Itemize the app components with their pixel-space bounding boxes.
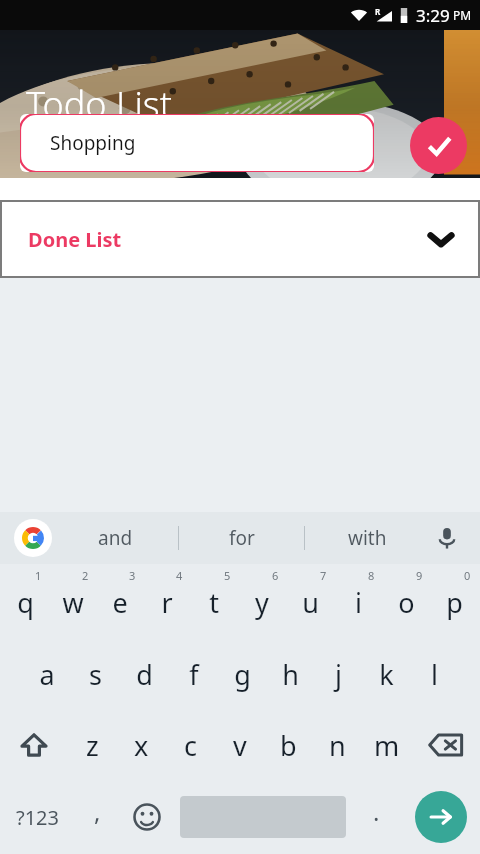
staticText: r: [161, 584, 173, 621]
staticText: 8: [368, 568, 375, 583]
staticText: t: [209, 584, 219, 621]
staticText: ,: [94, 795, 101, 828]
staticText: 2: [82, 568, 89, 583]
button[interactable]: b: [264, 710, 313, 780]
staticText: i: [355, 584, 362, 621]
staticText: 5: [224, 568, 231, 583]
staticText: x: [134, 727, 149, 764]
staticText: 9: [416, 568, 423, 583]
button[interactable]: v: [215, 710, 264, 780]
button[interactable]: x: [117, 710, 166, 780]
button[interactable]: ,: [75, 780, 120, 854]
staticText: 4: [176, 568, 183, 583]
staticText: 0: [464, 568, 471, 583]
button[interactable]: Google: [14, 519, 52, 557]
button[interactable]: and: [52, 512, 178, 564]
button[interactable]: r: [143, 566, 190, 638]
button[interactable]: for: [179, 512, 304, 564]
button[interactable]: q: [2, 566, 49, 638]
staticText: s: [89, 656, 102, 693]
staticText: a: [39, 656, 55, 693]
button[interactable]: Done List: [2, 202, 478, 276]
staticText: c: [184, 727, 197, 764]
button[interactable]: Emoji: [120, 780, 174, 854]
button[interactable]: Shopping: [20, 114, 374, 172]
staticText: 3: [129, 568, 136, 583]
button[interactable]: ?123: [0, 780, 75, 854]
button[interactable]: w: [49, 566, 96, 638]
staticText: 6: [272, 568, 279, 583]
staticText: d: [136, 656, 153, 693]
staticText: w: [62, 584, 84, 621]
button[interactable]: Backspace: [411, 710, 480, 780]
button[interactable]: m: [362, 710, 411, 780]
staticText: and: [98, 525, 133, 551]
staticText: p: [446, 584, 463, 621]
button[interactable]: j: [314, 638, 362, 710]
staticText: g: [234, 656, 251, 693]
staticText: .: [373, 795, 380, 828]
button[interactable]: with: [305, 512, 430, 564]
button[interactable]: d: [120, 638, 169, 710]
button[interactable]: Enter: [415, 791, 467, 843]
staticText: b: [280, 727, 297, 764]
staticText: h: [282, 656, 299, 693]
staticText: o: [398, 584, 415, 621]
button[interactable]: g: [218, 638, 266, 710]
staticText: v: [233, 727, 247, 764]
button[interactable]: Shift: [0, 710, 68, 780]
button[interactable]: u: [286, 566, 334, 638]
staticText: l: [431, 656, 438, 693]
button[interactable]: y: [238, 566, 286, 638]
staticText: Todo List: [26, 80, 172, 129]
staticText: Shopping: [50, 130, 136, 156]
button[interactable]: f: [169, 638, 218, 710]
staticText: ?123: [16, 804, 59, 831]
staticText: m: [374, 727, 400, 764]
staticText: 1: [35, 568, 42, 583]
staticText: u: [302, 584, 319, 621]
staticText: n: [329, 727, 346, 764]
button[interactable]: Add todo: [410, 117, 467, 174]
staticText: with: [348, 525, 387, 551]
button[interactable]: h: [266, 638, 314, 710]
staticText: for: [229, 525, 255, 551]
staticText: z: [86, 727, 99, 764]
button[interactable]: s: [71, 638, 120, 710]
button[interactable]: c: [166, 710, 215, 780]
staticText: 7: [320, 568, 327, 583]
staticText: j: [335, 656, 342, 693]
staticText: PM: [453, 7, 472, 23]
staticText: R: [375, 6, 381, 17]
staticText: q: [17, 584, 34, 621]
button[interactable]: o: [382, 566, 430, 638]
button[interactable]: n: [313, 710, 362, 780]
staticText: f: [189, 656, 199, 693]
button[interactable]: a: [22, 638, 71, 710]
staticText: 3:29: [416, 4, 450, 27]
button[interactable]: k: [362, 638, 410, 710]
button[interactable]: Voice input: [430, 521, 464, 555]
staticText: e: [112, 584, 128, 621]
button[interactable]: z: [68, 710, 117, 780]
button[interactable]: p: [430, 566, 478, 638]
button[interactable]: i: [334, 566, 382, 638]
staticText: Done List: [28, 226, 122, 253]
staticText: y: [255, 584, 269, 621]
staticText: k: [379, 656, 394, 693]
button[interactable]: t: [190, 566, 238, 638]
button[interactable]: .: [352, 780, 401, 854]
button[interactable]: e: [96, 566, 143, 638]
button[interactable]: l: [410, 638, 458, 710]
